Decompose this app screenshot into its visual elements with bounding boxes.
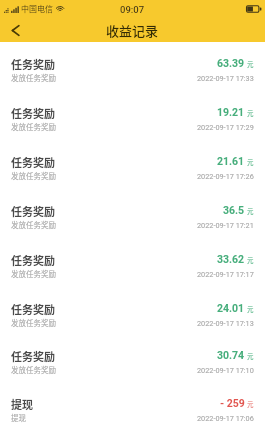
staticText: 发放任务奖励 (11, 364, 56, 375)
staticText: 任务奖励 (11, 154, 55, 170)
button[interactable]: 任务奖励 (0, 334, 265, 383)
staticText: 24.01 (217, 302, 245, 314)
staticText: 36.5 (223, 204, 245, 216)
staticText: 元 (247, 255, 254, 264)
staticText: 元 (247, 59, 254, 68)
button[interactable]: 提现 (0, 382, 265, 431)
staticText: 元 (247, 351, 254, 360)
staticText: 元 (247, 399, 254, 408)
staticText: 元 (247, 304, 254, 313)
staticText: 任务奖励 (11, 105, 55, 121)
staticText: 2022-09-17 17:17 (197, 270, 254, 279)
staticText: 发放任务奖励 (11, 121, 56, 132)
staticText: - 259 (220, 397, 245, 409)
staticText: 任务奖励 (11, 348, 55, 364)
staticText: 元 (247, 157, 254, 166)
staticText: 发放任务奖励 (11, 170, 56, 181)
staticText: 发放任务奖励 (11, 72, 56, 83)
button[interactable]: Back (0, 18, 30, 42)
staticText: 09:07 (120, 4, 145, 15)
staticText: 2022-09-17 17:06 (197, 414, 254, 423)
staticText: 发放任务奖励 (11, 268, 56, 279)
staticText: 元 (247, 108, 254, 117)
button[interactable]: 任务奖励 (0, 287, 265, 336)
staticText: 2022-09-17 17:26 (197, 172, 254, 181)
staticText: 元 (247, 206, 254, 215)
staticText: 2022-09-17 17:21 (197, 221, 254, 230)
staticText: 2022-09-17 17:10 (197, 366, 254, 375)
staticText: 30.74 (217, 349, 245, 361)
button[interactable]: 任务奖励 (0, 42, 265, 91)
staticText: 收益记录 (106, 21, 159, 40)
staticText: 提现 (11, 396, 33, 412)
button[interactable]: 任务奖励 (0, 140, 265, 189)
staticText: 任务奖励 (11, 203, 55, 219)
staticText: 2022-09-17 17:33 (197, 74, 254, 83)
staticText: 63.39 (217, 57, 245, 69)
staticText: 任务奖励 (11, 252, 55, 268)
staticText: 2022-09-17 17:13 (197, 319, 254, 328)
staticText: 任务奖励 (11, 301, 55, 317)
button[interactable]: 任务奖励 (0, 238, 265, 287)
staticText: 提现 (11, 412, 26, 423)
staticText: 21.61 (217, 155, 245, 167)
staticText: 33.62 (217, 253, 245, 265)
staticText: 任务奖励 (11, 56, 55, 72)
staticText: 2022-09-17 17:29 (197, 123, 254, 132)
button[interactable]: 任务奖励 (0, 91, 265, 140)
staticText: 发放任务奖励 (11, 219, 56, 230)
button[interactable]: 任务奖励 (0, 189, 265, 238)
staticText: 中国电信 (21, 3, 53, 15)
staticText: 19.21 (217, 106, 245, 118)
staticText: 发放任务奖励 (11, 317, 56, 328)
